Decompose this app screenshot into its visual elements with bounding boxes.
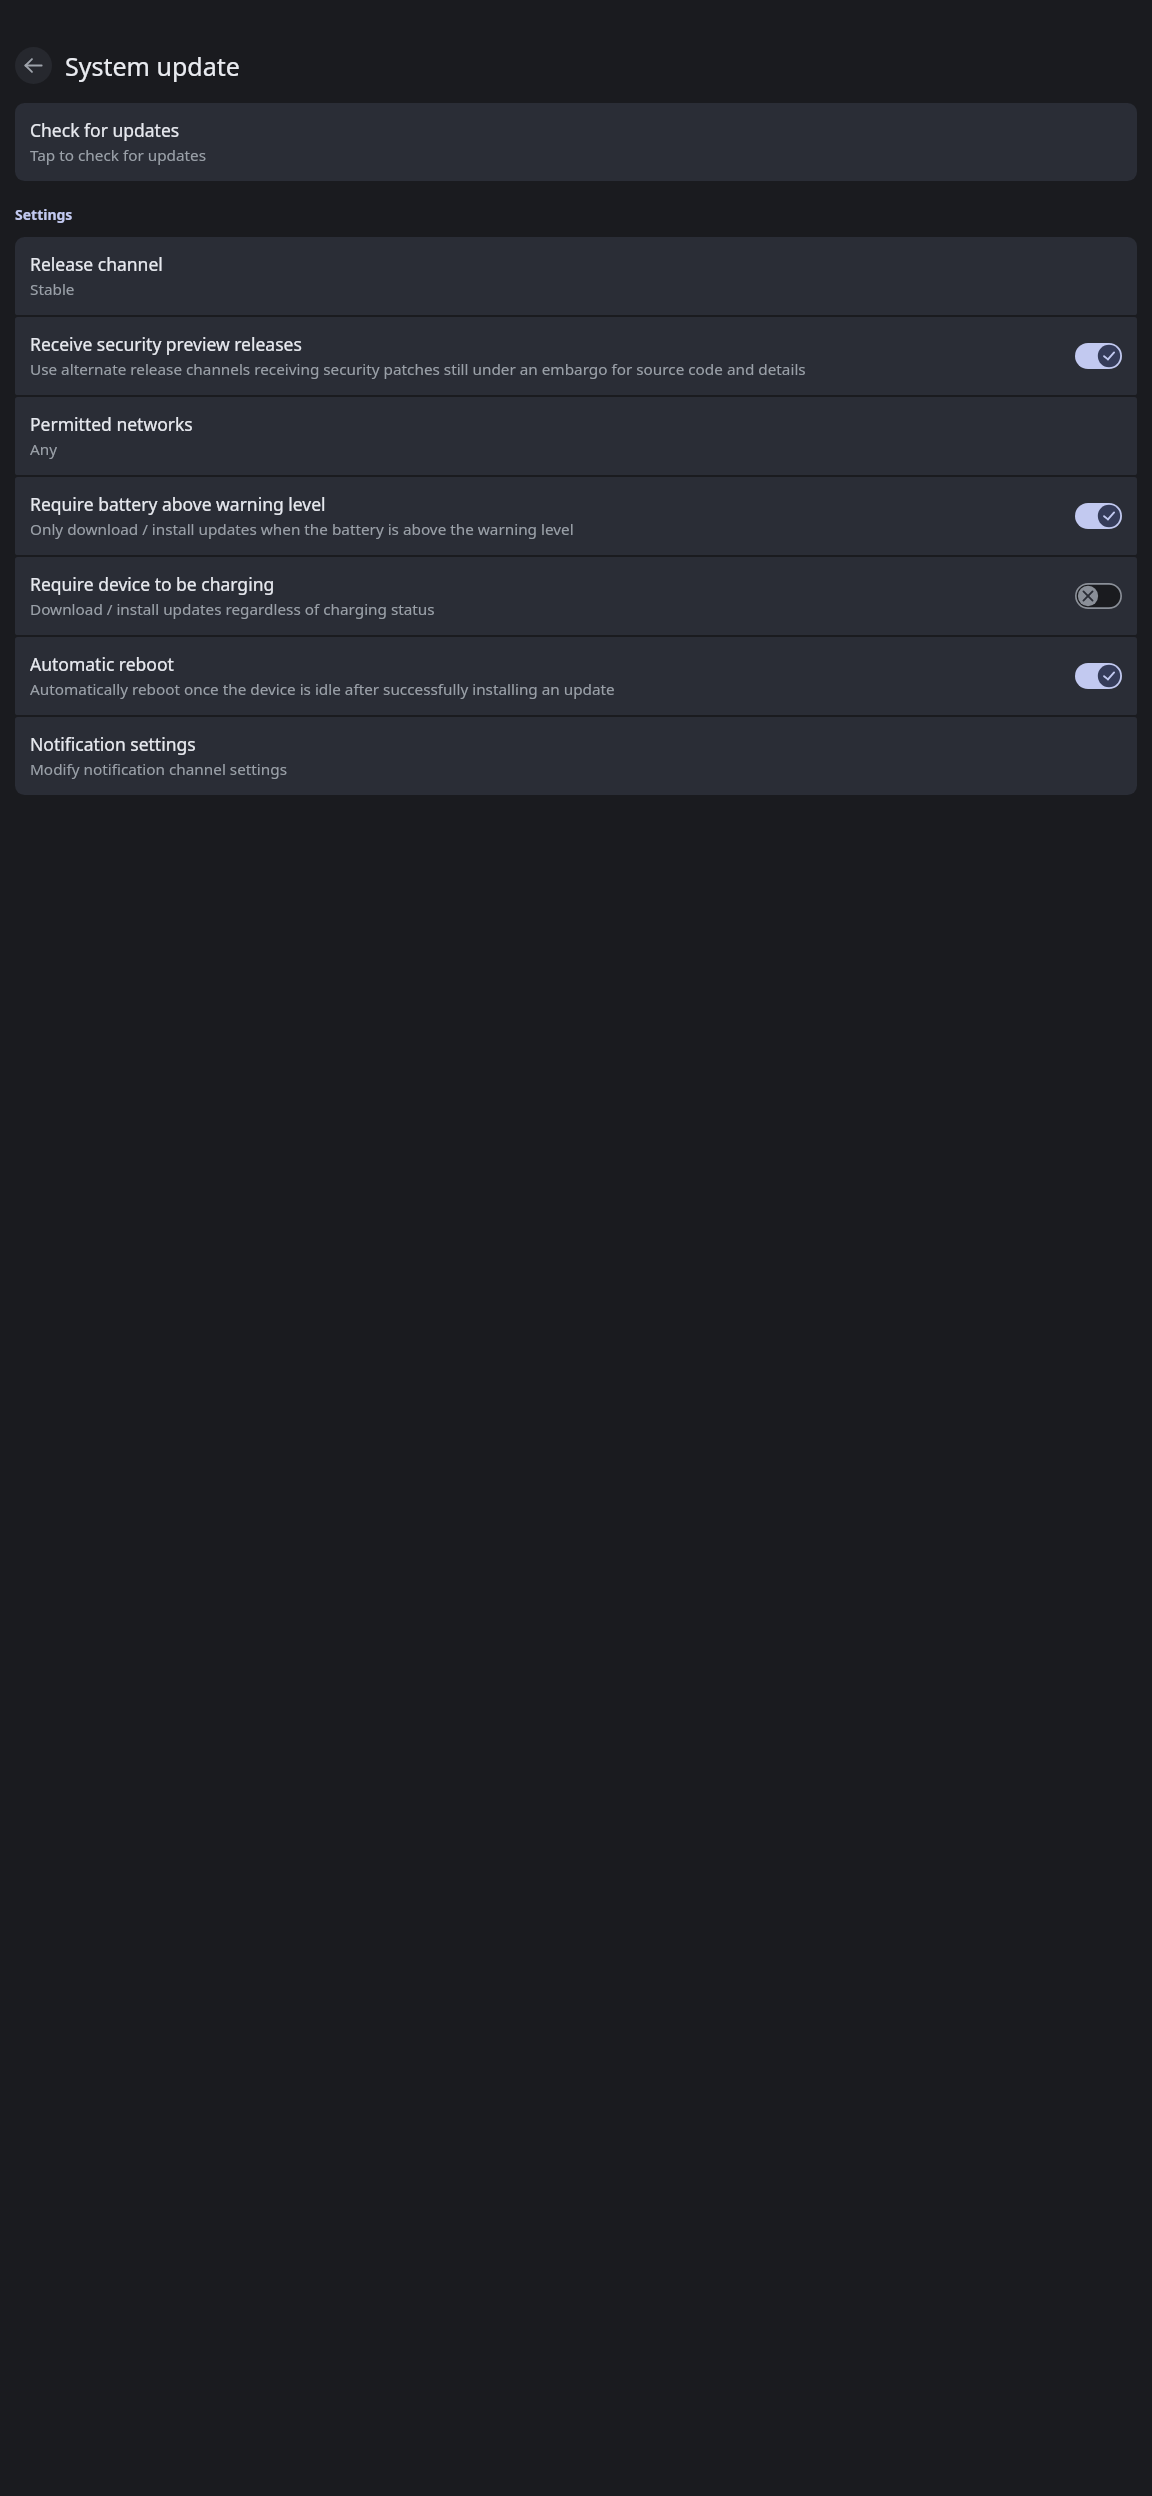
button[interactable]: Release channel: [15, 237, 1137, 315]
staticText: Check for updates: [30, 118, 180, 142]
staticText: Automatic reboot: [30, 652, 174, 676]
button[interactable]: Notification settings: [15, 717, 1137, 795]
staticText: Settings: [15, 205, 73, 224]
staticText: Permitted networks: [30, 412, 193, 436]
button[interactable]: Back: [15, 47, 52, 84]
staticText: Download / install updates regardless of…: [30, 599, 435, 620]
staticText: Notification settings: [30, 732, 196, 756]
staticText: Stable: [30, 279, 75, 300]
staticText: Only download / install updates when the…: [30, 519, 574, 540]
button[interactable]: On: [1075, 503, 1122, 529]
button[interactable]: Receive security preview releases: [15, 317, 1137, 395]
button[interactable]: Check for updates: [15, 103, 1137, 181]
button[interactable]: Require battery above warning level: [15, 477, 1137, 555]
staticText: Tap to check for updates: [30, 145, 207, 166]
staticText: Release channel: [30, 252, 163, 276]
button[interactable]: On: [1075, 663, 1122, 689]
staticText: Receive security preview releases: [30, 332, 302, 356]
button[interactable]: Permitted networks: [15, 397, 1137, 475]
staticText: Require device to be charging: [30, 572, 275, 596]
button[interactable]: Automatic reboot: [15, 637, 1137, 715]
staticText: Use alternate release channels receiving…: [30, 359, 806, 380]
staticText: Modify notification channel settings: [30, 759, 287, 780]
button[interactable]: Require device to be charging: [15, 557, 1137, 635]
button[interactable]: On: [1075, 343, 1122, 369]
staticText: System update: [65, 49, 240, 83]
staticText: Automatically reboot once the device is …: [30, 679, 615, 700]
staticText: Require battery above warning level: [30, 492, 326, 516]
button[interactable]: Off: [1075, 583, 1122, 609]
staticText: Any: [30, 439, 58, 460]
